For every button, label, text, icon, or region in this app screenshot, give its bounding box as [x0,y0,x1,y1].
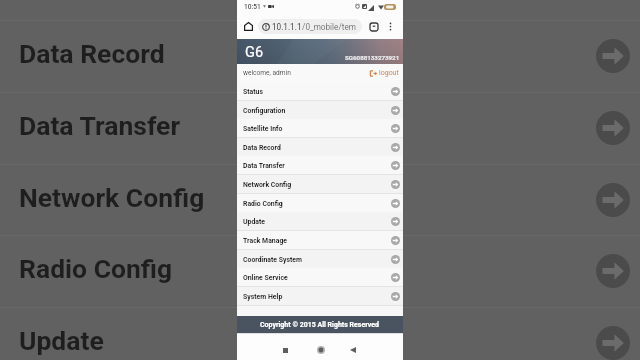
staticText: System Help [243,293,283,301]
staticText: welcome, admin [243,69,291,77]
button[interactable]: logout [370,69,399,77]
staticText: Radio Config [243,200,283,208]
staticText: 10:51 [244,3,261,11]
staticText: Satellite Info [243,125,283,133]
staticText: Status [243,88,263,96]
button[interactable]: System Help [237,287,403,306]
button[interactable]: Online Service [237,268,403,287]
button[interactable]: Home [241,19,255,33]
button[interactable]: Status [237,82,403,101]
button[interactable]: Satellite Info [237,119,403,138]
staticText: Update [243,218,266,226]
button[interactable]: Back [343,340,363,360]
staticText: /0_mobile/tem [302,22,357,32]
staticText: Data Transfer [19,110,181,141]
staticText: 10.1.1.1 [272,22,302,32]
button[interactable]: Data Record [237,138,403,157]
button[interactable]: Network Config [237,175,403,194]
staticText: Coordinate System [243,256,303,264]
staticText: Network Config [19,182,205,213]
staticText: Update [19,325,104,356]
staticText: Network Config [243,181,292,189]
staticText: Online Service [243,274,288,282]
staticText: Data Record [19,38,165,69]
staticText: Data Transfer [243,162,285,170]
staticText: Copyright © 2015 All Rights Reserved [260,321,380,329]
staticText: SG6088133273921 [345,54,400,61]
staticText: Track Manage [243,237,288,245]
button[interactable]: Track Manage [237,231,403,250]
button[interactable]: Recent apps [275,340,295,360]
staticText: Data Record [243,144,281,152]
button[interactable]: Update [237,212,403,231]
button[interactable]: Home [311,340,331,360]
button[interactable]: 10.1.1.1 [258,19,362,34]
button[interactable]: More options [384,20,397,33]
staticText: Radio Config [19,253,173,284]
staticText: G6 [245,44,264,61]
button[interactable]: Data Transfer [237,156,403,175]
button[interactable]: Tabs [367,20,380,33]
staticText: Configuration [243,107,286,115]
button[interactable]: Configuration [237,101,403,120]
button[interactable]: Coordinate System [237,250,403,269]
staticText: logout [379,69,399,77]
button[interactable]: Radio Config [237,194,403,213]
